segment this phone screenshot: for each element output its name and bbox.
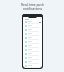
button[interactable]: Notifications <box>23 18 42 20</box>
button[interactable]: Notification 7 <box>23 44 42 48</box>
button[interactable]: Notification 2 <box>23 24 42 28</box>
staticText: Real-time push notifications <box>21 3 44 11</box>
button[interactable]: Notification 6 <box>23 40 42 44</box>
button[interactable]: Notification 8 <box>23 48 42 52</box>
button[interactable]: Notification 10 <box>23 56 42 60</box>
button[interactable]: Notification 11 <box>23 60 42 64</box>
button[interactable]: Notification 12 <box>23 64 42 68</box>
button[interactable]: Notification 4 <box>23 32 42 36</box>
button[interactable]: Notification 3 <box>23 28 42 32</box>
button[interactable]: Notification 1 <box>23 20 42 24</box>
button[interactable]: Notification 5 <box>23 36 42 40</box>
button[interactable]: Notification 9 <box>23 52 42 56</box>
